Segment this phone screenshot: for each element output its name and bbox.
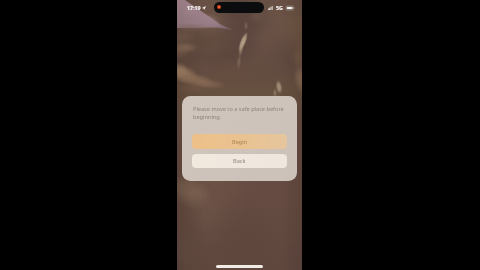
button[interactable]: Begin xyxy=(192,134,287,149)
staticText: Please move to a safe place before begin… xyxy=(193,105,285,121)
staticText: 5G xyxy=(276,4,283,11)
staticText: Begin xyxy=(232,138,248,146)
button[interactable]: Back xyxy=(192,154,287,168)
staticText: Back xyxy=(233,157,246,165)
staticText: 17:19 xyxy=(187,4,201,11)
